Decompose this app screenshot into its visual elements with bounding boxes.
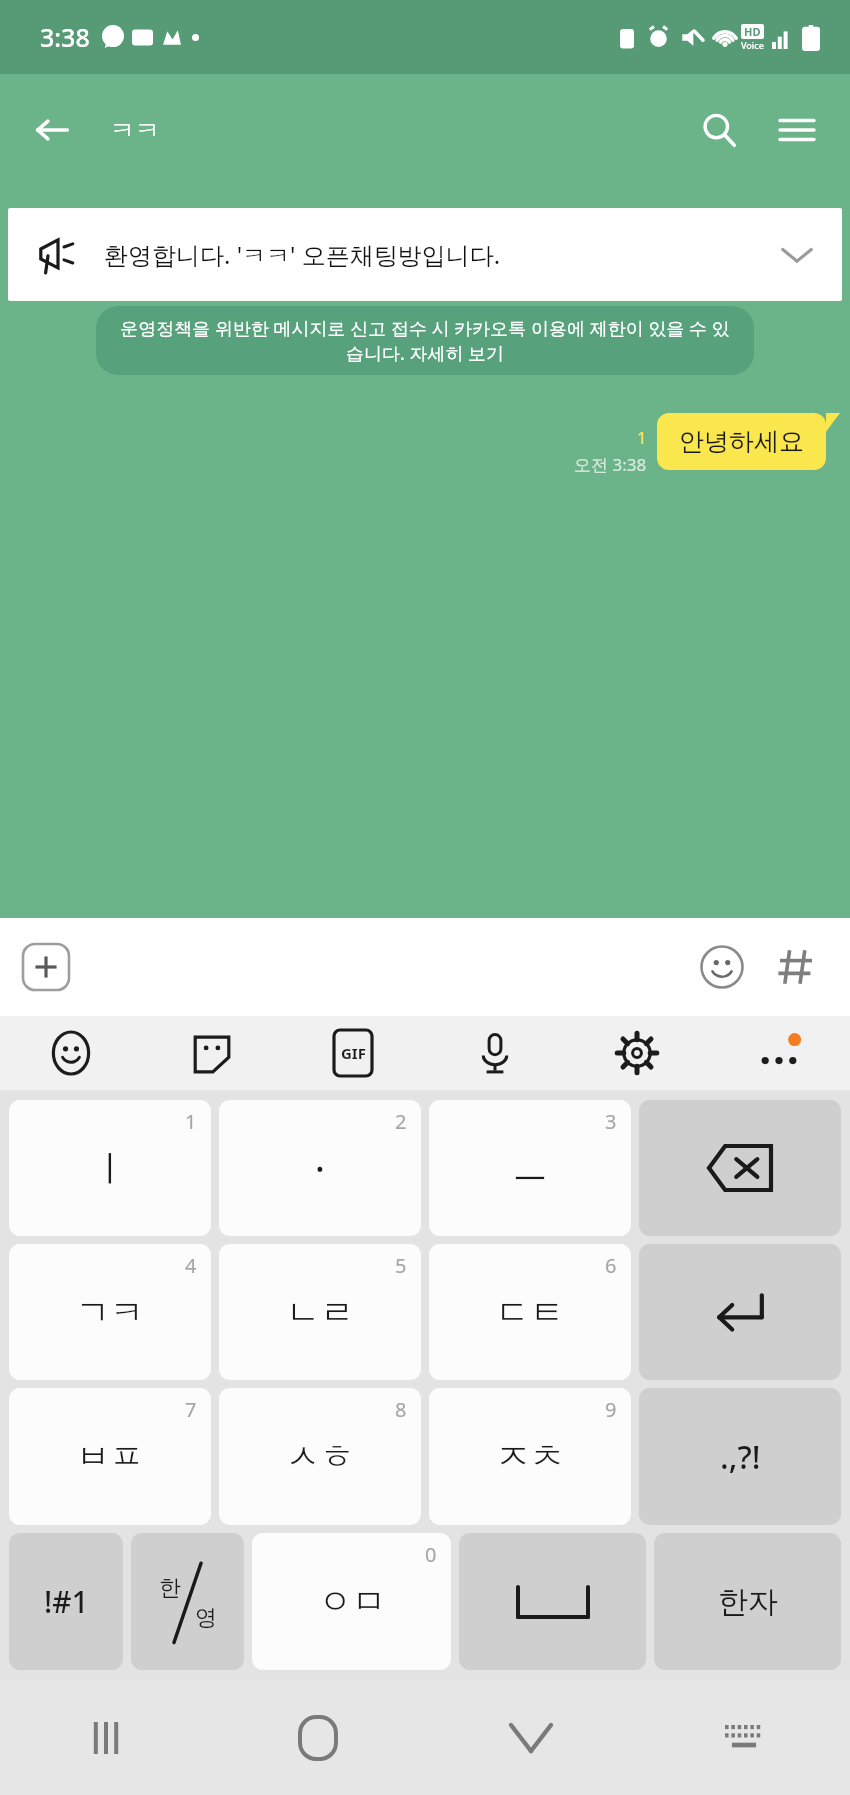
- button[interactable]: Hashtag: [766, 937, 826, 997]
- staticText: ㄱㅋ: [76, 1291, 144, 1334]
- button[interactable]: ㄱㅋ: [9, 1244, 211, 1380]
- button[interactable]: ㅅㅎ: [219, 1388, 421, 1525]
- button[interactable]: !#1: [9, 1533, 123, 1670]
- button[interactable]: Backspace: [639, 1100, 841, 1236]
- staticText: !#1: [44, 1581, 89, 1622]
- staticText: ㅡ: [512, 1146, 548, 1191]
- button[interactable]: Enter: [639, 1244, 841, 1380]
- button[interactable]: Voice input: [424, 1016, 566, 1090]
- staticText: 4: [185, 1252, 197, 1279]
- button[interactable]: Switch keyboard: [637, 1680, 850, 1795]
- staticText: 7: [185, 1396, 197, 1423]
- button[interactable]: GIF: [282, 1016, 424, 1090]
- button[interactable]: More: [708, 1016, 850, 1090]
- button[interactable]: Home: [212, 1680, 424, 1795]
- staticText: HD: [744, 24, 761, 39]
- staticText: ㅋㅋ: [110, 115, 160, 146]
- staticText: ㅅㅎ: [286, 1435, 354, 1478]
- button[interactable]: Keyboard settings: [566, 1016, 708, 1090]
- button[interactable]: ㅂㅍ: [9, 1388, 211, 1525]
- staticText: 0: [425, 1541, 437, 1568]
- staticText: 8: [395, 1396, 407, 1423]
- button[interactable]: Sticker: [141, 1016, 282, 1090]
- button[interactable]: .,?!: [639, 1388, 841, 1525]
- staticText: 2: [395, 1108, 407, 1135]
- staticText: GIF: [341, 1043, 366, 1063]
- button[interactable]: ㄴㄹ: [219, 1244, 421, 1380]
- staticText: 오전 3:38: [574, 453, 647, 476]
- button[interactable]: 안녕하세요: [657, 413, 826, 470]
- button[interactable]: ㄷㅌ: [429, 1244, 631, 1380]
- button[interactable]: Space: [459, 1533, 646, 1670]
- button[interactable]: ㅡ: [429, 1100, 631, 1236]
- staticText: 환영합니다. 'ㅋㅋ' 오픈채팅방입니다.: [104, 238, 780, 271]
- button[interactable]: Add attachment: [16, 937, 76, 997]
- button[interactable]: Menu: [766, 99, 828, 161]
- staticText: ㄷㅌ: [496, 1291, 564, 1334]
- staticText: 안녕하세요: [679, 426, 804, 457]
- staticText: 1: [637, 426, 647, 449]
- button[interactable]: 한자: [654, 1533, 841, 1670]
- button[interactable]: ㅣ: [9, 1100, 211, 1236]
- staticText: 한자: [718, 1583, 778, 1621]
- staticText: ·: [315, 1144, 325, 1193]
- button[interactable]: Hide keyboard: [424, 1680, 637, 1795]
- staticText: ㅣ: [92, 1146, 128, 1191]
- staticText: Voice: [741, 39, 764, 51]
- button[interactable]: Emoticon: [692, 937, 752, 997]
- staticText: ㅈㅊ: [496, 1435, 564, 1478]
- button[interactable]: Search: [688, 99, 750, 161]
- staticText: 3:38: [40, 20, 90, 54]
- button[interactable]: ㅈㅊ: [429, 1388, 631, 1525]
- button[interactable]: Emoji: [0, 1016, 141, 1090]
- staticText: 운영정책을 위반한 메시지로 신고 접수 시 카카오톡 이용에 제한이 있을 수…: [116, 316, 734, 365]
- button[interactable]: Back: [24, 102, 80, 158]
- staticText: 5: [395, 1252, 407, 1279]
- button[interactable]: Language: [131, 1533, 244, 1670]
- button[interactable]: ㅇㅁ: [252, 1533, 451, 1670]
- staticText: ㄴㄹ: [286, 1291, 354, 1334]
- staticText: ㅂㅍ: [76, 1435, 144, 1478]
- staticText: 1: [185, 1108, 197, 1135]
- staticText: 한: [159, 1574, 181, 1602]
- staticText: 6: [605, 1252, 617, 1279]
- button[interactable]: Recents: [0, 1680, 212, 1795]
- staticText: .,?!: [720, 1435, 761, 1479]
- staticText: 9: [605, 1396, 617, 1423]
- button[interactable]: 환영합니다. 'ㅋㅋ' 오픈채팅방입니다.: [8, 208, 842, 301]
- staticText: 영: [195, 1604, 217, 1632]
- staticText: 3: [605, 1108, 617, 1135]
- staticText: ㅇㅁ: [318, 1580, 386, 1623]
- button[interactable]: ·: [219, 1100, 421, 1236]
